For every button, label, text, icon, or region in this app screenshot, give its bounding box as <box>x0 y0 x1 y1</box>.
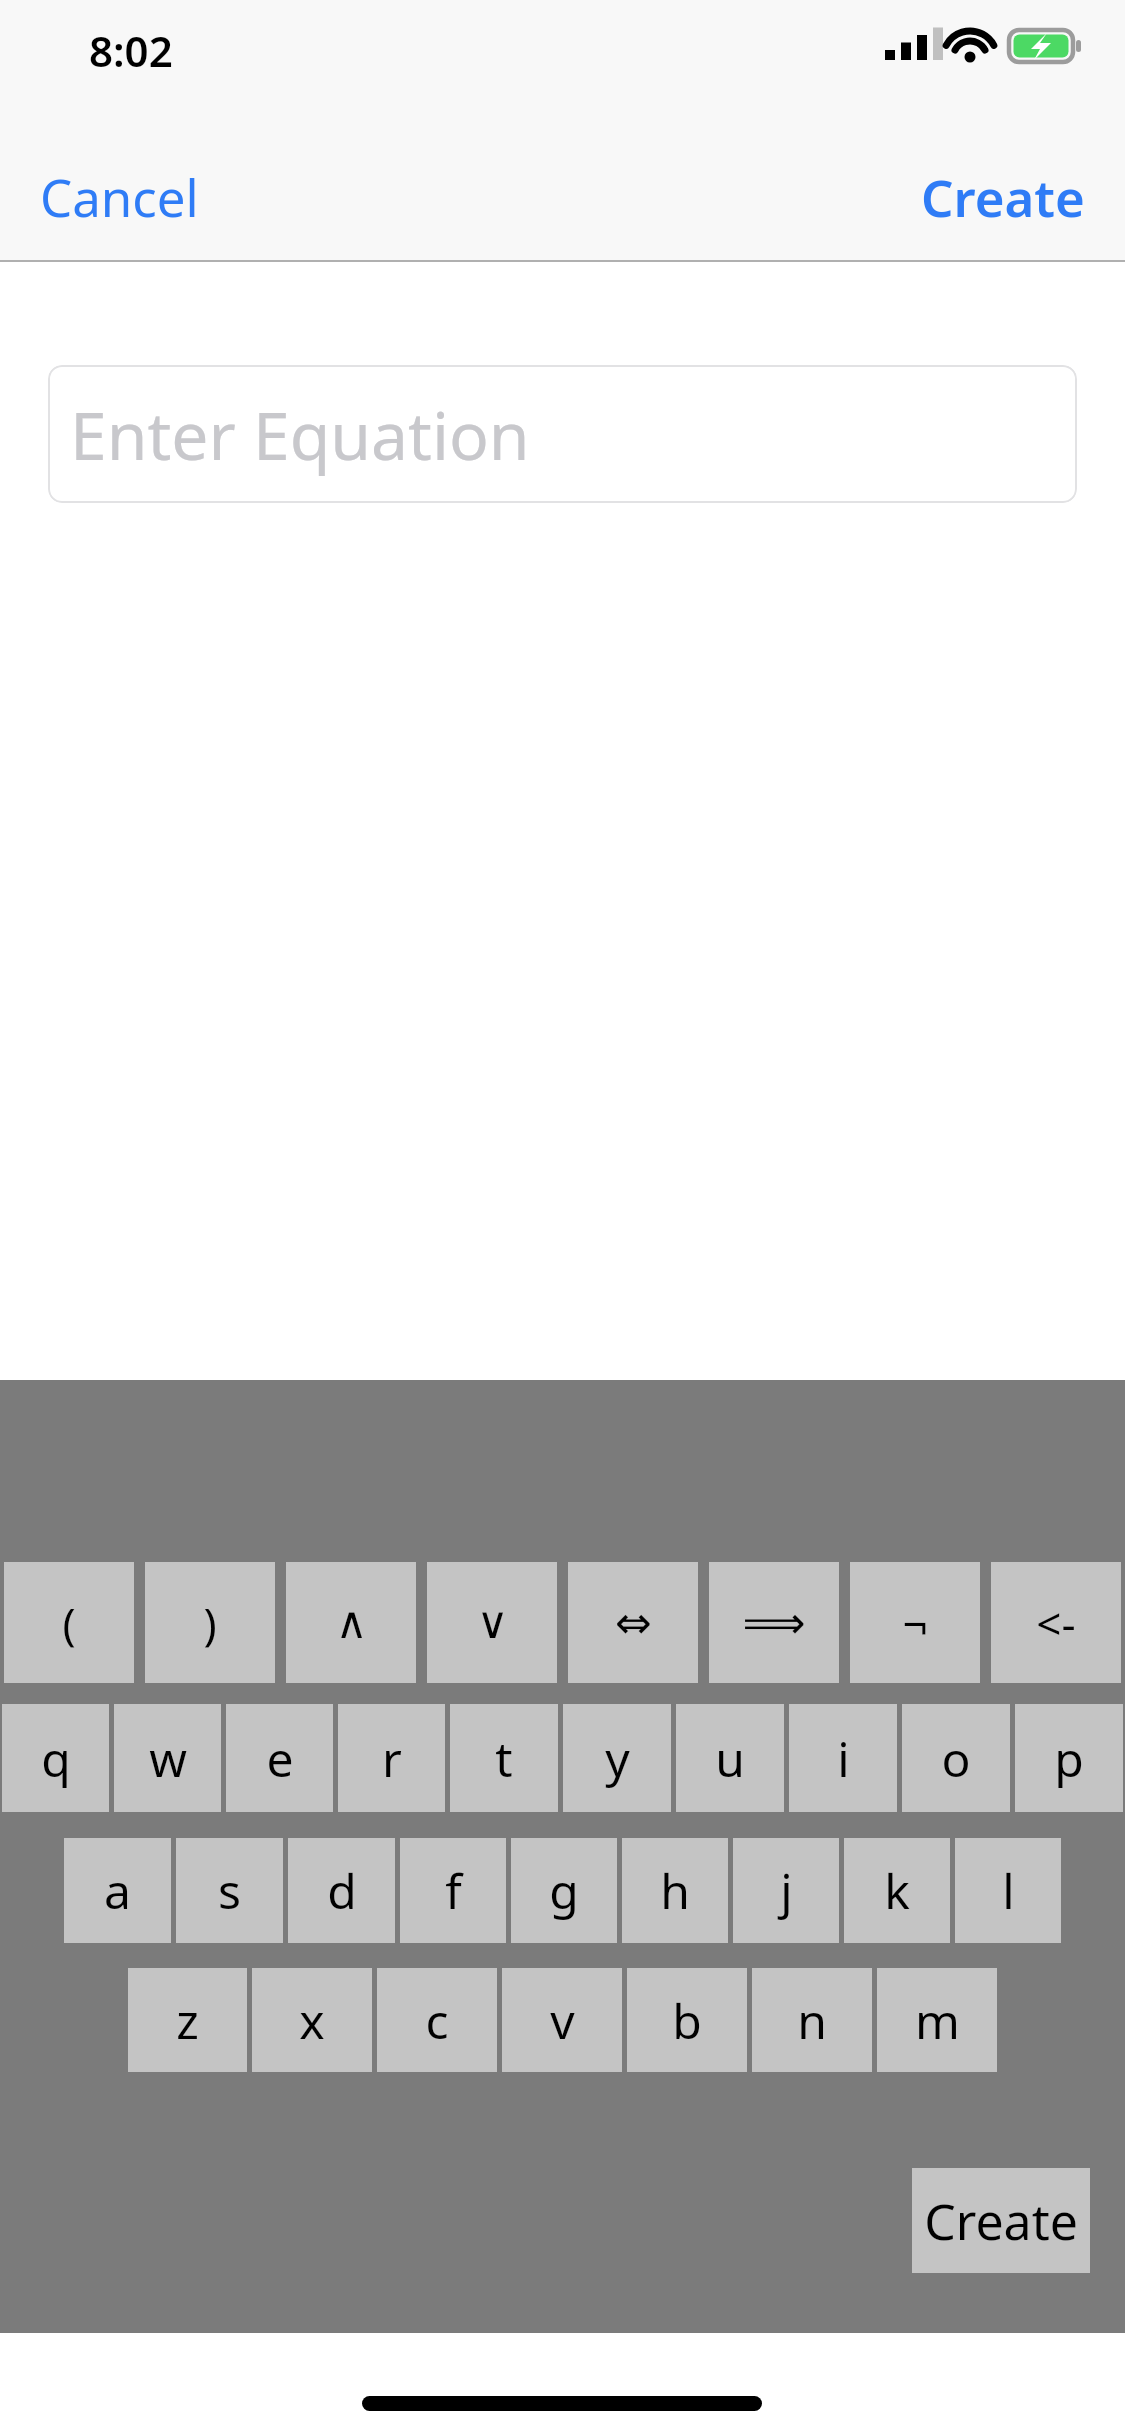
button[interactable]: c <box>377 1968 497 2072</box>
button[interactable]: j <box>733 1838 839 1943</box>
button[interactable]: r <box>338 1704 445 1812</box>
staticText: Cancel <box>40 162 199 231</box>
button[interactable]: b <box>627 1968 747 2072</box>
staticText: y <box>605 1726 630 1791</box>
button[interactable]: h <box>622 1838 728 1943</box>
staticText: o <box>941 1726 971 1791</box>
staticText: e <box>266 1726 294 1791</box>
staticText: ⇔ <box>615 1597 652 1648</box>
staticText: b <box>672 1988 702 2053</box>
staticText: ∨ <box>476 1597 509 1648</box>
button[interactable]: g <box>511 1838 617 1943</box>
button[interactable]: d <box>288 1838 395 1943</box>
staticText: k <box>884 1858 910 1923</box>
staticText: ¬ <box>902 1593 928 1653</box>
staticText: n <box>797 1988 827 2053</box>
staticText: i <box>837 1726 850 1791</box>
button[interactable]: Create <box>899 146 1107 247</box>
staticText: <- <box>1036 1593 1076 1653</box>
button[interactable]: u <box>676 1704 784 1812</box>
staticText: j <box>780 1858 793 1923</box>
button[interactable]: ( <box>4 1562 134 1683</box>
button[interactable]: ⇔ <box>568 1562 698 1683</box>
button[interactable]: ) <box>145 1562 275 1683</box>
button[interactable]: q <box>2 1704 109 1812</box>
button[interactable]: ¬ <box>850 1562 980 1683</box>
staticText: p <box>1054 1726 1084 1791</box>
button[interactable]: v <box>502 1968 622 2072</box>
staticText: s <box>218 1858 241 1923</box>
staticText: ) <box>203 1593 217 1653</box>
staticText: l <box>1002 1858 1015 1923</box>
button[interactable]: ∨ <box>427 1562 557 1683</box>
button[interactable]: ∧ <box>286 1562 416 1683</box>
staticText: z <box>176 1988 199 2053</box>
staticText: 8:02 <box>89 22 173 79</box>
button[interactable]: m <box>877 1968 997 2072</box>
staticText: a <box>104 1858 131 1923</box>
staticText: h <box>660 1858 690 1923</box>
button[interactable]: f <box>400 1838 506 1943</box>
button[interactable]: o <box>902 1704 1010 1812</box>
button[interactable]: Enter Equation <box>48 365 1077 503</box>
button[interactable]: k <box>844 1838 950 1943</box>
staticText: m <box>915 1988 960 2053</box>
staticText: x <box>299 1988 325 2053</box>
staticText: f <box>445 1858 462 1923</box>
staticText: ( <box>62 1593 76 1653</box>
button[interactable]: Cancel <box>18 146 221 247</box>
staticText: w <box>149 1726 187 1791</box>
staticText: ∧ <box>335 1597 368 1648</box>
staticText: q <box>41 1726 71 1791</box>
button[interactable]: p <box>1015 1704 1123 1812</box>
button[interactable]: l <box>955 1838 1061 1943</box>
button[interactable]: y <box>563 1704 671 1812</box>
staticText: Enter Equation <box>70 389 530 479</box>
button[interactable]: w <box>114 1704 221 1812</box>
staticText: g <box>549 1858 579 1923</box>
staticText: c <box>425 1988 449 2053</box>
staticText: u <box>715 1726 745 1791</box>
button[interactable]: ⟹ <box>709 1562 839 1683</box>
button[interactable]: a <box>64 1838 171 1943</box>
staticText: v <box>550 1988 575 2053</box>
button[interactable]: z <box>128 1968 247 2072</box>
staticText: r <box>382 1726 402 1791</box>
staticText: t <box>495 1726 513 1791</box>
button[interactable]: e <box>226 1704 333 1812</box>
staticText: Create <box>921 162 1085 231</box>
button[interactable]: n <box>752 1968 872 2072</box>
staticText: ⟹ <box>742 1597 806 1648</box>
other: Home indicator <box>362 2396 762 2411</box>
staticText: Create <box>924 2187 1078 2255</box>
button[interactable]: t <box>450 1704 558 1812</box>
button[interactable]: s <box>176 1838 283 1943</box>
staticText: d <box>327 1858 357 1923</box>
button[interactable]: <- <box>991 1562 1121 1683</box>
button[interactable]: x <box>252 1968 372 2072</box>
button[interactable]: Create <box>912 2168 1090 2273</box>
button[interactable]: i <box>789 1704 897 1812</box>
